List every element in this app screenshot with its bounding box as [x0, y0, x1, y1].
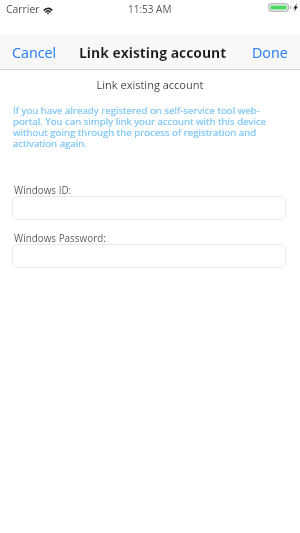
staticText: 11:53 AM — [128, 2, 172, 16]
staticText: Link existing account — [79, 43, 227, 62]
staticText: Link existing account — [0, 77, 300, 92]
other: Battery charging — [268, 3, 291, 12]
staticText: Windows Password: — [14, 231, 106, 244]
button[interactable]: Cancel — [0, 36, 67, 69]
other: Wi-Fi signal — [42, 4, 54, 14]
button[interactable]: Windows ID — [12, 196, 286, 220]
staticText: Carrier — [6, 2, 40, 16]
staticText: Windows ID: — [14, 183, 72, 196]
button[interactable]: Done — [242, 36, 300, 69]
staticText: If you have already registered on self-s… — [13, 104, 273, 150]
button[interactable]: Windows Password — [12, 244, 286, 268]
staticText: Done — [252, 43, 288, 62]
staticText: Cancel — [12, 43, 57, 62]
